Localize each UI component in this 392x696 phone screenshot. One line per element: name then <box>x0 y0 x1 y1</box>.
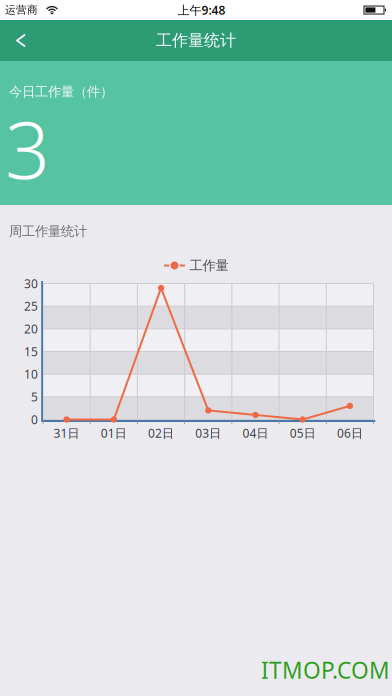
staticText: 03日 <box>195 425 221 441</box>
staticText: 25 <box>24 298 38 314</box>
staticText: 工作量统计 <box>156 31 236 50</box>
staticText: 工作量 <box>189 257 228 274</box>
staticText: 10 <box>24 366 38 382</box>
staticText: 02日 <box>148 425 174 441</box>
staticText: 20 <box>24 321 38 337</box>
staticText: 运营商 <box>5 3 38 16</box>
staticText: 周工作量统计 <box>9 223 87 239</box>
staticText: 5 <box>31 389 38 405</box>
staticText: 今日工作量（件） <box>9 84 113 100</box>
staticText: 15 <box>24 343 38 359</box>
staticText: ITMOP.COM <box>261 655 390 685</box>
staticText: 05日 <box>290 425 316 441</box>
staticText: 04日 <box>242 425 268 441</box>
staticText: 30 <box>24 275 38 291</box>
staticText: 31日 <box>54 425 80 441</box>
staticText: 01日 <box>101 425 127 441</box>
staticText: 0 <box>31 411 38 427</box>
button[interactable]: Back <box>0 21 43 60</box>
staticText: 06日 <box>337 425 363 441</box>
staticText: 上午9:48 <box>177 2 225 18</box>
staticText: 3 <box>5 96 50 200</box>
